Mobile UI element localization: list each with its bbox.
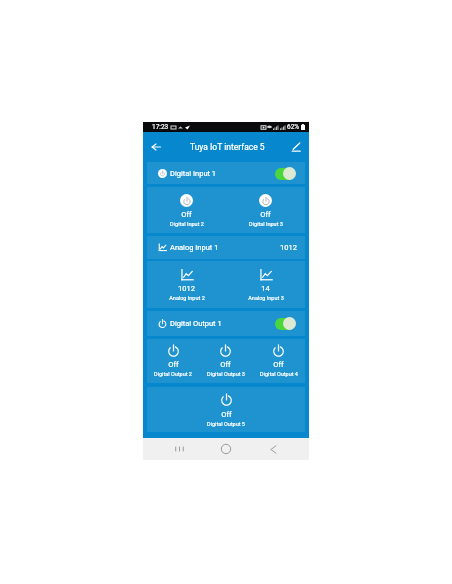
button[interactable]: Home <box>215 438 237 460</box>
button[interactable]: 14 <box>226 261 305 301</box>
staticText: Digital Output 4 <box>260 371 298 377</box>
staticText: 1012 <box>280 243 297 252</box>
staticText: Analog Input 2 <box>169 295 205 301</box>
button[interactable]: Off <box>147 339 199 377</box>
staticText: 62% <box>287 123 300 131</box>
staticText: Off <box>168 360 179 369</box>
staticText: Digital Input 2 <box>170 221 204 227</box>
button[interactable]: Edit <box>288 139 304 155</box>
staticText: Digital Output 1 <box>170 319 222 328</box>
staticText: Digital Output 2 <box>154 371 192 377</box>
button[interactable]: Analog Input 1 <box>147 236 305 259</box>
button[interactable]: Off <box>199 339 252 377</box>
button[interactable]: Off <box>147 187 226 227</box>
button[interactable]: Toggle <box>274 317 296 330</box>
button[interactable]: Back <box>262 438 284 460</box>
staticText: 14 <box>261 284 270 293</box>
button[interactable]: Back <box>148 139 164 155</box>
staticText: Off <box>273 360 284 369</box>
staticText: Off <box>260 210 271 219</box>
staticText: 1012 <box>178 284 195 293</box>
staticText: Digital Input 1 <box>170 169 217 178</box>
button[interactable]: 1012 <box>147 261 226 301</box>
button[interactable]: Digital Input 1 <box>147 162 305 184</box>
staticText: Off <box>181 210 192 219</box>
staticText: 17:23 <box>152 123 169 131</box>
button[interactable]: Digital Output 1 <box>147 311 305 336</box>
staticText: Off <box>220 360 231 369</box>
staticText: Analog Input 1 <box>170 243 219 252</box>
staticText: Tuya IoT interface 5 <box>190 142 265 152</box>
button[interactable]: Toggle <box>274 167 296 180</box>
button[interactable]: Recents <box>168 438 190 460</box>
staticText: Digital Output 5 <box>207 421 245 427</box>
staticText: Digital Output 3 <box>207 371 245 377</box>
staticText: Off <box>221 410 232 419</box>
staticText: Digital Input 3 <box>249 221 283 227</box>
button[interactable]: Off <box>147 387 305 427</box>
button[interactable]: Off <box>226 187 305 227</box>
staticText: Analog Input 3 <box>248 295 284 301</box>
button[interactable]: Off <box>252 339 305 377</box>
